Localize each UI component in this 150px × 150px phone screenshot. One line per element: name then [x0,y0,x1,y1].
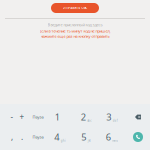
button[interactable]: Call [127,127,149,147]
staticText: Пауза [32,114,43,120]
staticText: mno [112,139,118,143]
staticText: нажмите еще раз на кнопку отправить [40,34,109,39]
button[interactable]: 6 [101,127,123,147]
staticText: abc [87,119,91,123]
button[interactable]: - [4,107,20,127]
staticText: + [19,112,24,122]
staticText: 2 [81,111,86,123]
staticText: def [113,119,118,123]
staticText: 6 [106,131,111,143]
button[interactable]: Пауза [29,127,47,147]
button[interactable]: 1 [47,107,69,127]
button[interactable]: ОТПРАВИТЬ СМС [51,3,99,13]
staticText: Введите присланный код здесь [47,22,102,27]
button[interactable]: + [14,107,30,127]
staticText: - [10,112,13,122]
staticText: , [11,132,13,142]
button[interactable]: 5 [75,127,97,147]
staticText: Если в течение 15 минут код не пришел, [39,28,110,34]
staticText: ghi [61,139,66,143]
button[interactable]: . [14,127,30,147]
staticText: 4 [54,131,59,143]
staticText: . [21,132,23,142]
staticText: Пауза [32,134,43,140]
button[interactable]: Backspace [127,107,149,127]
staticText: jkl [88,139,91,143]
button[interactable]: , [4,127,20,147]
button[interactable]: 3 [101,107,123,127]
staticText: 5 [81,131,86,143]
staticText: 1 [55,111,60,123]
button[interactable]: 4 [49,127,71,147]
button[interactable]: 2 [75,107,97,127]
staticText: 3 [106,111,111,123]
button[interactable]: Пауза [29,107,47,127]
staticText: ОТПРАВИТЬ СМС [62,6,87,10]
